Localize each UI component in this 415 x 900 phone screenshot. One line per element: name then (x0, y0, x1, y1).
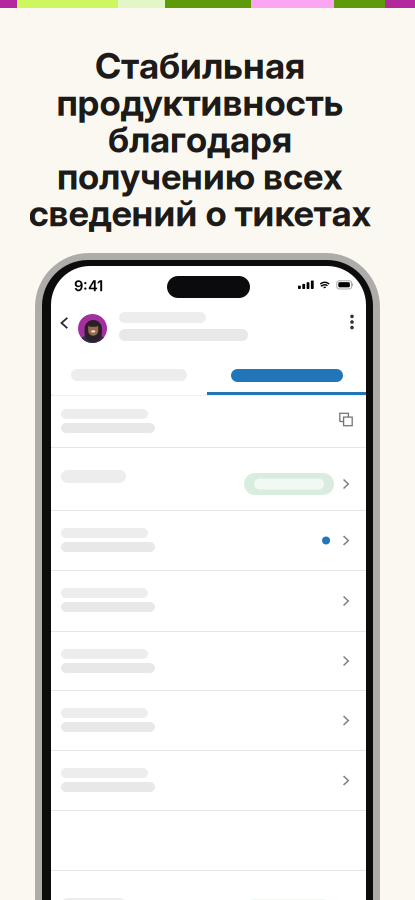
button[interactable]: Profile (78, 314, 107, 343)
staticText: получению всех (57, 155, 343, 198)
button[interactable] (51, 811, 366, 871)
button[interactable] (51, 448, 366, 511)
staticText: сведений о тикетах (28, 192, 371, 235)
button[interactable] (51, 751, 366, 811)
button[interactable] (53, 355, 205, 395)
button[interactable] (208, 355, 366, 394)
staticText: благодаря (108, 118, 292, 161)
staticText: 9:41 (74, 277, 103, 295)
button[interactable] (51, 396, 366, 448)
button[interactable] (51, 691, 366, 751)
staticText: продуктивность (56, 81, 343, 124)
button[interactable] (51, 632, 366, 691)
staticText: Стабильная (95, 44, 305, 87)
button[interactable]: Back (52, 309, 76, 337)
button[interactable]: More options (339, 308, 365, 336)
button[interactable] (51, 571, 366, 632)
button[interactable] (51, 511, 366, 571)
